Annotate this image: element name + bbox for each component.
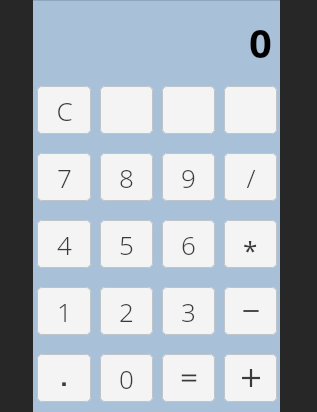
staticText: 0	[249, 15, 272, 69]
button[interactable]: Blank key	[162, 86, 215, 134]
button[interactable]: 8	[100, 153, 153, 201]
staticText: 1	[57, 294, 72, 329]
staticText: 9	[181, 160, 196, 195]
button[interactable]: 4	[37, 220, 91, 268]
button[interactable]: Equals	[162, 354, 215, 402]
button[interactable]: Blank key	[100, 86, 153, 134]
button[interactable]: Add	[224, 354, 277, 402]
staticText: 3	[181, 294, 196, 329]
staticText: 2	[119, 294, 134, 329]
button[interactable]: 2	[100, 287, 153, 335]
staticText: 0	[119, 361, 134, 396]
button[interactable]: Blank key	[224, 86, 277, 134]
staticText: 5	[119, 227, 134, 262]
button[interactable]: /	[224, 153, 277, 201]
button[interactable]: Decimal point	[37, 354, 91, 402]
staticText: 6	[181, 227, 196, 262]
button[interactable]: 5	[100, 220, 153, 268]
staticText: 4	[57, 227, 72, 262]
staticText: /	[246, 160, 256, 195]
button[interactable]: 0	[100, 354, 153, 402]
button[interactable]: 3	[162, 287, 215, 335]
staticText: 8	[119, 160, 134, 195]
button[interactable]: 1	[37, 287, 91, 335]
button[interactable]: 9	[162, 153, 215, 201]
staticText: 7	[57, 160, 72, 195]
staticText: *	[243, 232, 258, 267]
button[interactable]: Subtract	[224, 287, 277, 335]
staticText: C	[56, 93, 73, 128]
button[interactable]: 6	[162, 220, 215, 268]
button[interactable]: Multiply	[224, 220, 277, 268]
button[interactable]: Clear	[37, 86, 91, 134]
button[interactable]: 7	[37, 153, 91, 201]
